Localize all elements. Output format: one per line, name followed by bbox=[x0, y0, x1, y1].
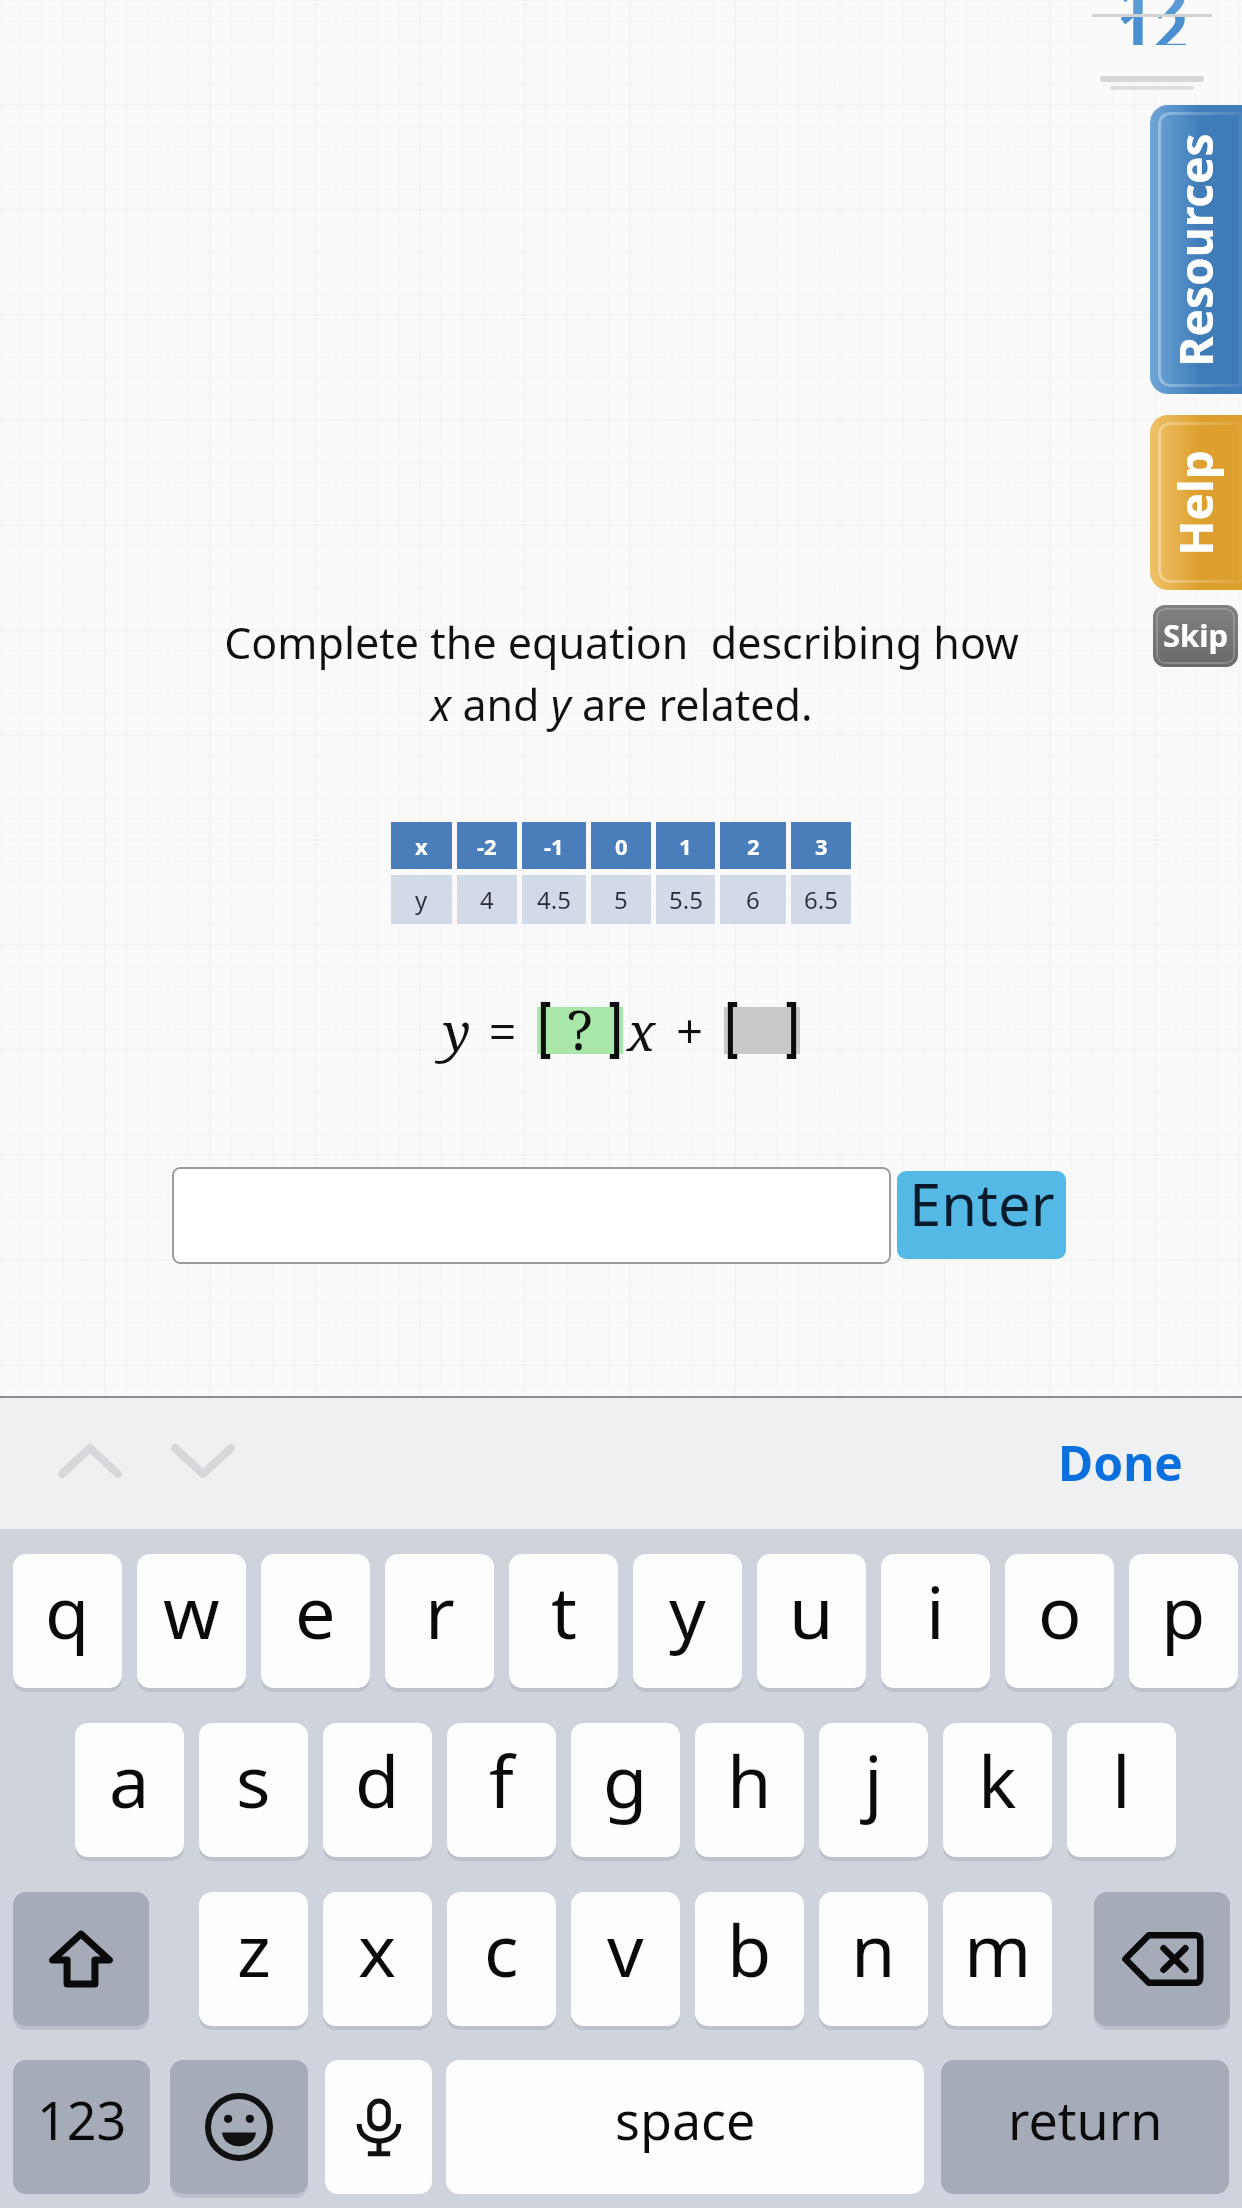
button[interactable]: 123 bbox=[13, 2060, 150, 2194]
button[interactable]: q bbox=[13, 1554, 122, 1688]
staticText: 3 bbox=[815, 831, 828, 861]
staticText: m bbox=[964, 1900, 1032, 1998]
button[interactable]: Question number 12 bbox=[1092, 0, 1212, 14]
button[interactable]: x bbox=[323, 1892, 432, 2026]
staticText: 2 bbox=[747, 831, 760, 861]
staticText: o bbox=[1038, 1562, 1082, 1660]
button[interactable]: l bbox=[1067, 1723, 1176, 1857]
button[interactable]: Shift bbox=[13, 1892, 149, 2026]
staticText: -1 bbox=[544, 831, 564, 861]
staticText: Skip bbox=[1163, 614, 1229, 656]
staticText: -2 bbox=[477, 831, 497, 861]
staticText: 6.5 bbox=[804, 883, 838, 916]
staticText: z bbox=[237, 1900, 271, 1998]
button[interactable]: v bbox=[571, 1892, 680, 2026]
staticText: + bbox=[675, 995, 705, 1066]
staticText: 1 bbox=[679, 831, 692, 861]
staticText: w bbox=[163, 1562, 220, 1660]
button[interactable]: Skip bbox=[1153, 605, 1238, 667]
staticText: n bbox=[851, 1900, 896, 1998]
staticText: 12 bbox=[1117, 0, 1188, 14]
staticText: x bbox=[415, 831, 428, 861]
staticText: 123 bbox=[37, 2084, 127, 2155]
button[interactable]: u bbox=[757, 1554, 866, 1688]
button[interactable]: Enter bbox=[897, 1171, 1066, 1259]
staticText: = bbox=[488, 995, 518, 1066]
staticText: q bbox=[45, 1562, 90, 1660]
staticText: 5.5 bbox=[669, 883, 703, 916]
button[interactable] bbox=[172, 1167, 891, 1264]
staticText: Done bbox=[1058, 1430, 1183, 1495]
button[interactable]: space bbox=[446, 2060, 924, 2194]
staticText: return bbox=[1008, 2084, 1163, 2155]
staticText: g bbox=[603, 1731, 648, 1829]
button[interactable]: t bbox=[509, 1554, 618, 1688]
button[interactable]: r bbox=[385, 1554, 494, 1688]
button[interactable]: m bbox=[943, 1892, 1052, 2026]
button[interactable]: j bbox=[819, 1723, 928, 1857]
staticText: e bbox=[295, 1562, 336, 1660]
button[interactable]: Previous field bbox=[39, 1426, 141, 1496]
staticText: d bbox=[355, 1731, 400, 1829]
button[interactable]: f bbox=[447, 1723, 556, 1857]
staticText: x bbox=[358, 1900, 397, 1998]
staticText: a bbox=[109, 1731, 150, 1829]
staticText: 5 bbox=[614, 883, 628, 916]
staticText: f bbox=[489, 1731, 514, 1829]
button[interactable]: h bbox=[695, 1723, 804, 1857]
staticText: u bbox=[789, 1562, 834, 1660]
staticText: r bbox=[425, 1562, 455, 1660]
button[interactable]: i bbox=[881, 1554, 990, 1688]
staticText: Resources bbox=[1164, 133, 1227, 367]
staticText: Help bbox=[1164, 450, 1227, 556]
button[interactable]: d bbox=[323, 1723, 432, 1857]
button[interactable]: g bbox=[571, 1723, 680, 1857]
staticText: x bbox=[627, 995, 656, 1066]
button[interactable]: o bbox=[1005, 1554, 1114, 1688]
button[interactable]: c bbox=[447, 1892, 556, 2026]
staticText: y bbox=[415, 883, 428, 916]
staticText: p bbox=[1161, 1562, 1206, 1660]
button[interactable]: Done bbox=[1044, 1412, 1197, 1513]
button[interactable]: Emoji keyboard bbox=[170, 2060, 308, 2194]
button[interactable]: k bbox=[943, 1723, 1052, 1857]
staticText: c bbox=[484, 1900, 519, 1998]
button[interactable]: a bbox=[75, 1723, 184, 1857]
button[interactable]: return bbox=[941, 2060, 1229, 2194]
button[interactable]: w bbox=[137, 1554, 246, 1688]
staticText: Enter bbox=[909, 1171, 1055, 1243]
staticText: i bbox=[926, 1562, 945, 1660]
staticText: ? bbox=[567, 992, 593, 1066]
staticText: y bbox=[669, 1562, 706, 1660]
staticText: 6 bbox=[746, 883, 760, 916]
staticText: k bbox=[978, 1731, 1017, 1829]
staticText: space bbox=[615, 2084, 756, 2155]
button[interactable]: z bbox=[199, 1892, 308, 2026]
staticText: 4.5 bbox=[537, 883, 571, 916]
staticText: l bbox=[1112, 1731, 1131, 1829]
button[interactable]: Dictation bbox=[325, 2060, 432, 2194]
staticText: s bbox=[236, 1731, 271, 1829]
staticText: b bbox=[727, 1900, 772, 1998]
staticText: h bbox=[727, 1731, 772, 1829]
staticText: j bbox=[864, 1731, 883, 1829]
staticText: v bbox=[607, 1900, 644, 1998]
button[interactable]: Backspace bbox=[1094, 1892, 1230, 2026]
staticText: Complete the equation describing how x a… bbox=[224, 613, 1019, 733]
button[interactable]: b bbox=[695, 1892, 804, 2026]
staticText: t bbox=[551, 1562, 577, 1660]
button[interactable]: Help bbox=[1150, 415, 1242, 590]
staticText: 12 bbox=[1117, 17, 1188, 45]
button[interactable]: Next field bbox=[152, 1426, 254, 1496]
button[interactable]: s bbox=[199, 1723, 308, 1857]
button[interactable]: y bbox=[633, 1554, 742, 1688]
staticText: 0 bbox=[615, 831, 628, 861]
staticText: 4 bbox=[480, 883, 494, 916]
button[interactable]: n bbox=[819, 1892, 928, 2026]
button[interactable]: e bbox=[261, 1554, 370, 1688]
button[interactable]: p bbox=[1129, 1554, 1238, 1688]
staticText: y bbox=[443, 995, 471, 1066]
button[interactable]: Resources bbox=[1150, 105, 1242, 394]
